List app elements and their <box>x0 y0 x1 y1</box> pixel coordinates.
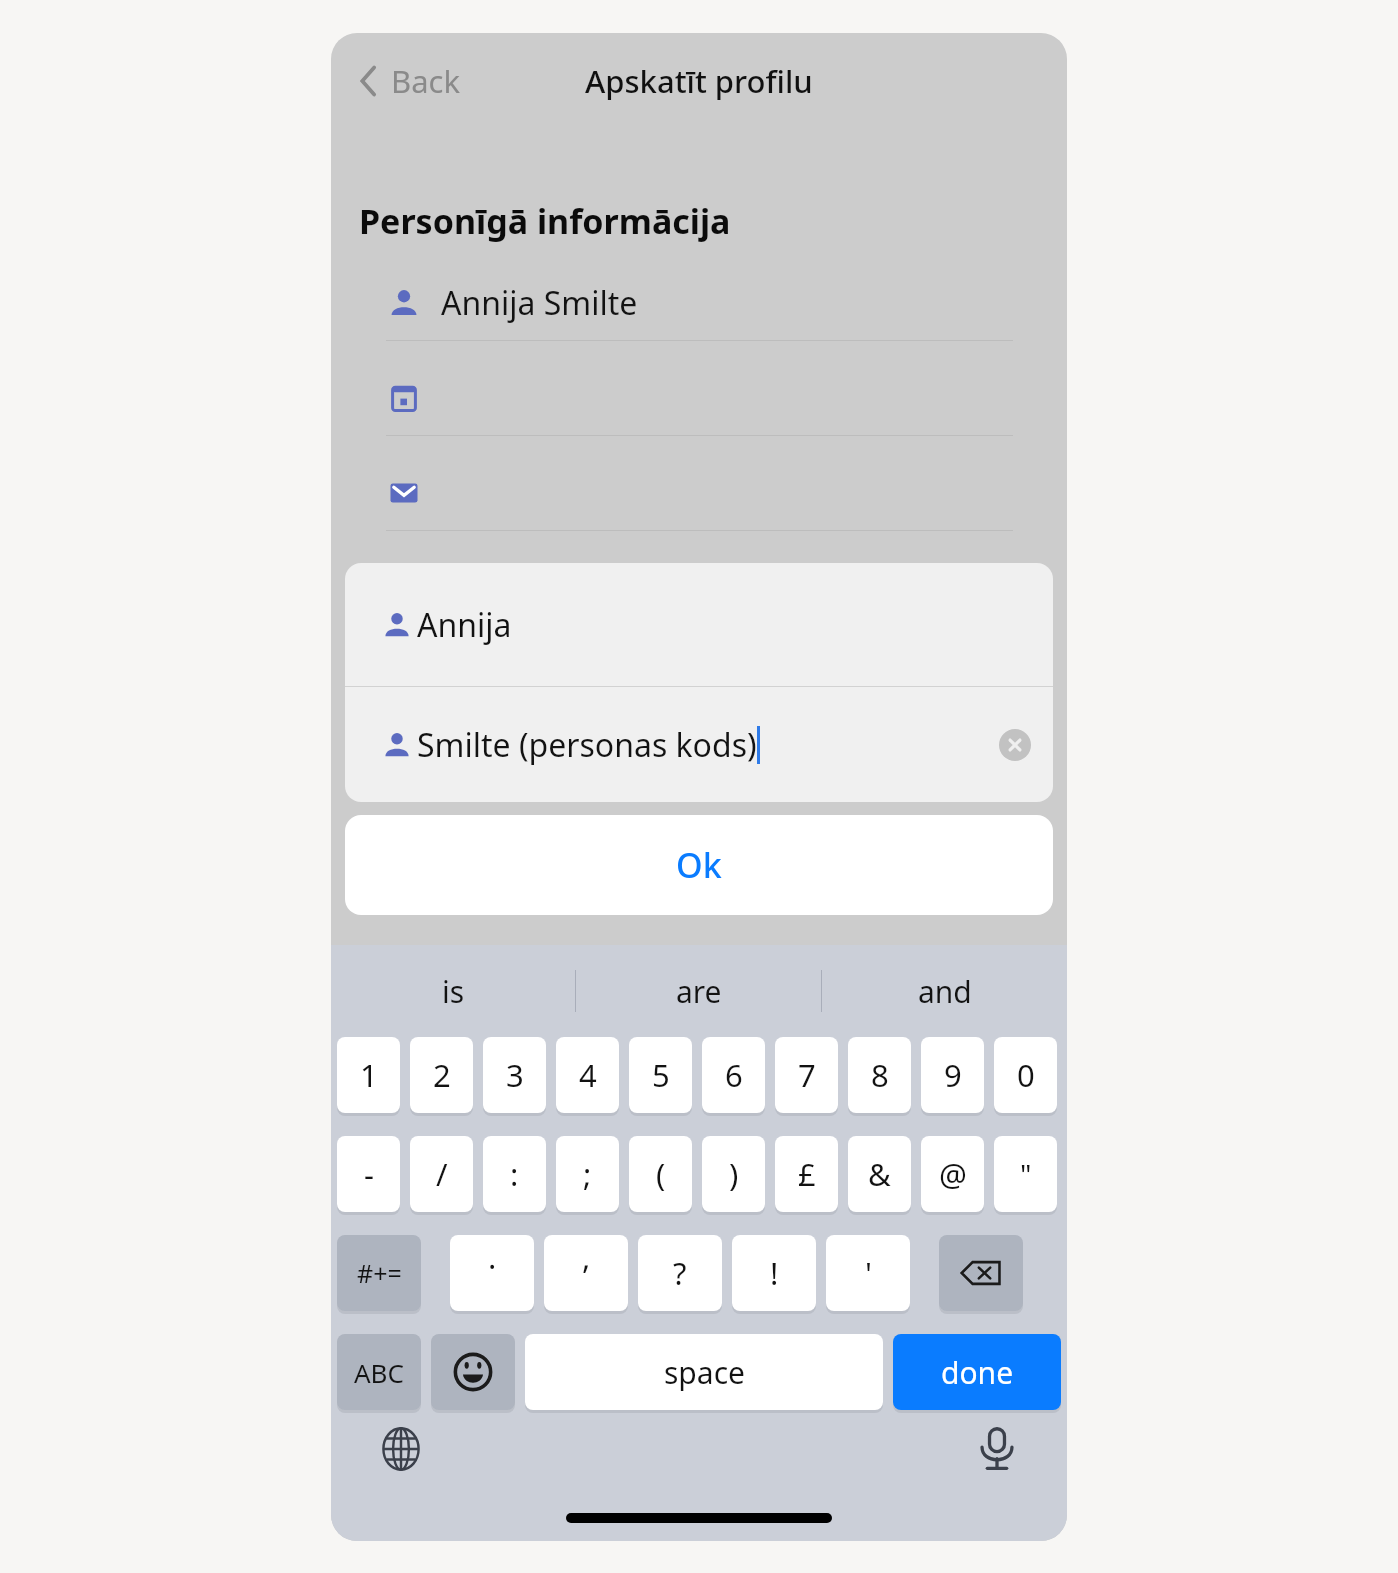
button[interactable]: ; <box>556 1136 619 1212</box>
button[interactable]: are <box>576 945 821 1037</box>
staticText: are <box>676 971 722 1012</box>
button[interactable]: ) <box>702 1136 765 1212</box>
staticText: @ <box>939 1153 967 1195</box>
staticText: / <box>436 1153 448 1195</box>
staticText: ( <box>656 1153 666 1195</box>
staticText: 4 <box>579 1054 597 1096</box>
button[interactable]: Clear <box>999 729 1031 761</box>
button[interactable]: Annija Smilte <box>331 266 1067 361</box>
staticText: Back <box>391 60 460 102</box>
button[interactable]: Ok <box>345 815 1053 915</box>
staticText: 9 <box>944 1054 962 1096</box>
button[interactable]: 5 <box>629 1037 692 1113</box>
staticText: Ok <box>676 842 722 888</box>
button[interactable]: 7 <box>775 1037 838 1113</box>
staticText: ? <box>673 1252 687 1294</box>
button[interactable]: 2 <box>410 1037 473 1113</box>
button[interactable]: Emoji <box>431 1334 515 1410</box>
button[interactable]: Annija <box>345 603 1053 647</box>
button[interactable]: 9 <box>921 1037 984 1113</box>
staticText: 5 <box>652 1054 670 1096</box>
button[interactable]: Backspace <box>939 1235 1023 1311</box>
staticText: 7 <box>798 1054 816 1096</box>
button[interactable]: 6 <box>702 1037 765 1113</box>
staticText: : <box>510 1153 519 1195</box>
button[interactable]: ABC <box>337 1334 421 1410</box>
button[interactable]: and <box>822 945 1067 1037</box>
button[interactable]: Smilte (personas kods) <box>345 723 1053 767</box>
staticText: Apskatīt profilu <box>585 60 813 102</box>
button[interactable]: / <box>410 1136 473 1212</box>
button[interactable]: done <box>893 1334 1061 1410</box>
button[interactable]: 0 <box>994 1037 1057 1113</box>
staticText: . <box>488 1236 497 1278</box>
button[interactable]: £ <box>775 1136 838 1212</box>
button[interactable]: ! <box>732 1235 816 1311</box>
button[interactable]: - <box>337 1136 400 1212</box>
button[interactable]: ( <box>629 1136 692 1212</box>
button[interactable] <box>331 456 1067 551</box>
staticText: 2 <box>433 1054 451 1096</box>
staticText: 0 <box>1017 1054 1035 1096</box>
button[interactable]: . <box>450 1235 534 1311</box>
button[interactable]: : <box>483 1136 546 1212</box>
staticText: £ <box>798 1153 816 1195</box>
button[interactable]: ' <box>826 1235 910 1311</box>
staticText: space <box>664 1352 745 1393</box>
button[interactable]: Change keyboard <box>379 1427 423 1471</box>
button[interactable]: ? <box>638 1235 722 1311</box>
staticText: #+= <box>357 1256 402 1290</box>
staticText: 1 <box>360 1054 378 1096</box>
staticText: & <box>868 1153 891 1195</box>
button[interactable]: is <box>331 945 575 1037</box>
staticText: ' <box>865 1252 872 1294</box>
staticText: - <box>364 1153 374 1195</box>
staticText: Smilte (personas kods) <box>417 723 757 767</box>
button[interactable]: " <box>994 1136 1057 1212</box>
button[interactable]: 4 <box>556 1037 619 1113</box>
staticText: Personīgā informācija <box>359 198 731 244</box>
staticText: and <box>918 971 972 1012</box>
staticText: " <box>1020 1155 1032 1193</box>
button[interactable]: 8 <box>848 1037 911 1113</box>
button[interactable]: Dictation <box>975 1427 1019 1471</box>
staticText: ; <box>583 1153 592 1195</box>
staticText: is <box>442 971 465 1012</box>
button[interactable]: #+= <box>337 1235 421 1311</box>
button[interactable]: , <box>544 1235 628 1311</box>
button[interactable]: @ <box>921 1136 984 1212</box>
staticText: ) <box>729 1153 739 1195</box>
button[interactable]: space <box>525 1334 883 1410</box>
button[interactable]: 3 <box>483 1037 546 1113</box>
staticText: , <box>582 1236 591 1278</box>
staticText: 8 <box>871 1054 889 1096</box>
staticText: done <box>941 1352 1014 1393</box>
staticText: Annija <box>417 603 512 647</box>
button[interactable] <box>331 361 1067 456</box>
staticText: ABC <box>354 1355 404 1390</box>
staticText: 6 <box>725 1054 743 1096</box>
button[interactable]: Back <box>353 54 464 108</box>
staticText: 3 <box>506 1054 524 1096</box>
button[interactable]: & <box>848 1136 911 1212</box>
staticText: ! <box>770 1252 779 1294</box>
staticText: Annija Smilte <box>441 281 638 325</box>
button[interactable]: 1 <box>337 1037 400 1113</box>
